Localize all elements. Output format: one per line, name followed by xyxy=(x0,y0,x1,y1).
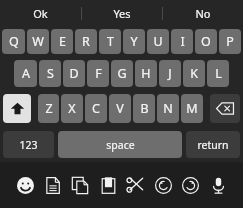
button[interactable]: V xyxy=(109,94,131,123)
staticText: 123 xyxy=(19,138,38,152)
button[interactable]: Voice input xyxy=(207,174,229,196)
button[interactable]: I xyxy=(171,29,193,54)
button[interactable]: Copy xyxy=(69,174,91,196)
button[interactable]: Cut xyxy=(124,174,146,196)
button[interactable]: No xyxy=(163,0,243,26)
button[interactable]: Paste xyxy=(97,174,119,196)
staticText: Z xyxy=(45,100,53,117)
staticText: R xyxy=(82,33,90,50)
staticText: O xyxy=(201,33,211,50)
staticText: space xyxy=(106,138,135,152)
button[interactable]: D xyxy=(63,60,85,87)
button[interactable]: X xyxy=(61,94,83,123)
button[interactable]: Yes xyxy=(82,0,162,26)
button[interactable]: Backspace xyxy=(210,94,240,123)
button[interactable]: Undo xyxy=(152,174,174,196)
button[interactable]: O xyxy=(195,29,217,54)
button[interactable]: F xyxy=(87,60,109,87)
button[interactable]: C xyxy=(85,94,107,123)
staticText: T xyxy=(107,33,114,50)
button[interactable]: N xyxy=(157,94,179,123)
staticText: E xyxy=(59,33,66,50)
staticText: D xyxy=(69,65,79,82)
staticText: A xyxy=(22,65,30,82)
staticText: M xyxy=(186,100,198,117)
staticText: P xyxy=(226,33,234,50)
staticText: U xyxy=(153,33,163,50)
button[interactable]: L xyxy=(207,60,229,87)
button[interactable]: Redo xyxy=(179,174,201,196)
staticText: X xyxy=(68,100,76,117)
button[interactable]: Shift xyxy=(3,94,31,123)
button[interactable]: Z xyxy=(38,94,59,123)
button[interactable]: P xyxy=(219,29,241,54)
button[interactable]: K xyxy=(183,60,205,87)
button[interactable]: U xyxy=(147,29,169,54)
button[interactable]: Document xyxy=(42,174,64,196)
button[interactable]: Q xyxy=(2,29,25,54)
staticText: F xyxy=(95,65,102,82)
staticText: V xyxy=(116,100,124,117)
staticText: J xyxy=(168,65,172,82)
staticText: L xyxy=(215,65,222,82)
button[interactable]: space xyxy=(58,131,182,158)
button[interactable]: Y xyxy=(123,29,145,54)
staticText: K xyxy=(190,65,198,82)
staticText: I xyxy=(180,33,185,50)
button[interactable]: J xyxy=(159,60,181,87)
button[interactable]: 123 xyxy=(3,131,54,158)
staticText: G xyxy=(117,65,127,82)
staticText: return xyxy=(197,138,229,152)
button[interactable]: T xyxy=(99,29,121,54)
staticText: S xyxy=(47,65,54,82)
button[interactable]: M xyxy=(181,94,203,123)
button[interactable]: W xyxy=(27,29,49,54)
button[interactable]: A xyxy=(14,60,37,87)
button[interactable]: B xyxy=(133,94,155,123)
staticText: C xyxy=(92,100,100,117)
button[interactable]: E xyxy=(51,29,73,54)
button[interactable]: return xyxy=(186,131,240,158)
staticText: B xyxy=(140,100,149,117)
button[interactable]: Ok xyxy=(0,0,81,26)
staticText: N xyxy=(163,100,173,117)
button[interactable]: G xyxy=(111,60,133,87)
staticText: Y xyxy=(130,33,138,50)
staticText: Yes xyxy=(113,6,131,21)
staticText: W xyxy=(32,33,44,50)
button[interactable]: S xyxy=(39,60,61,87)
staticText: H xyxy=(141,65,151,82)
button[interactable]: H xyxy=(135,60,157,87)
button[interactable]: R xyxy=(75,29,97,54)
button[interactable]: Emoji xyxy=(14,174,36,196)
staticText: No xyxy=(195,6,211,21)
staticText: Ok xyxy=(33,6,48,21)
staticText: Q xyxy=(9,33,19,50)
